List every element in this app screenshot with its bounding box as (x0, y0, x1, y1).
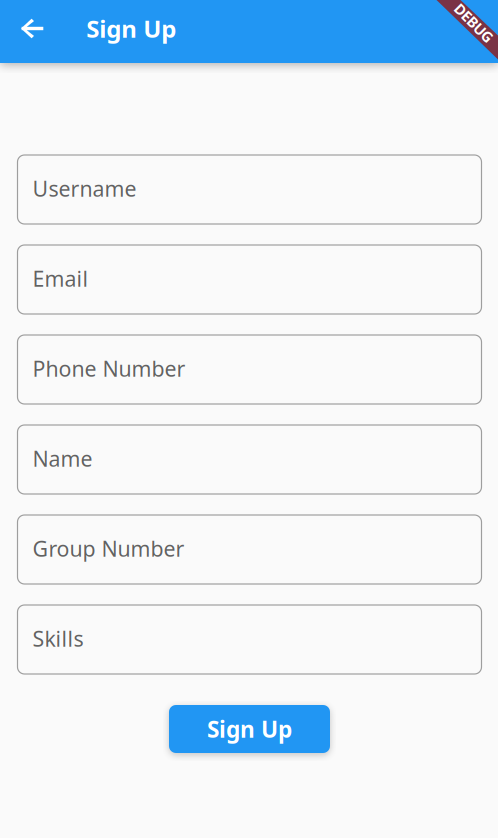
button[interactable]: Email (17, 245, 481, 314)
button[interactable]: Skills (17, 605, 481, 674)
staticText: Sign Up (86, 13, 176, 44)
button[interactable]: Sign Up (169, 705, 330, 753)
button[interactable]: Name (17, 425, 481, 494)
staticText: Skills (32, 624, 83, 653)
staticText: Sign Up (207, 714, 292, 744)
staticText: Phone Number (32, 354, 185, 383)
staticText: DEBUG (449, 13, 498, 33)
staticText: Name (32, 444, 92, 473)
staticText: Username (32, 174, 136, 203)
staticText: Group Number (32, 534, 184, 563)
button[interactable]: Username (17, 155, 481, 224)
staticText: Email (32, 264, 88, 293)
button[interactable]: Back (11, 0, 53, 63)
button[interactable]: Group Number (17, 515, 481, 584)
button[interactable]: Phone Number (17, 335, 481, 404)
